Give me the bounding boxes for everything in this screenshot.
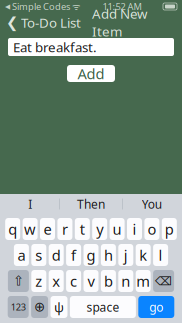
staticText: u — [113, 219, 122, 239]
button[interactable]: i — [127, 218, 142, 240]
staticText: t — [80, 219, 85, 239]
button[interactable]: w — [23, 218, 38, 240]
staticText: k — [139, 245, 147, 265]
button[interactable]: Then — [60, 194, 122, 214]
button[interactable]: space — [70, 296, 136, 318]
button[interactable]: Add — [67, 65, 115, 82]
staticText: h — [104, 245, 113, 265]
staticText: q — [8, 219, 17, 239]
staticText: l — [159, 245, 163, 265]
staticText: g — [86, 245, 95, 265]
button[interactable]: c — [66, 270, 81, 292]
staticText: i — [132, 219, 136, 239]
staticText: m — [136, 271, 150, 291]
staticText: x — [52, 271, 60, 291]
button[interactable]: o — [144, 218, 159, 240]
staticText: Eat breakfast. — [13, 38, 97, 56]
button[interactable]: h — [101, 244, 116, 266]
button[interactable]: z — [31, 270, 46, 292]
button[interactable]: r — [57, 218, 72, 240]
button[interactable]: Eat breakfast. — [0, 38, 182, 56]
button[interactable]: j — [118, 244, 133, 266]
staticText: b — [104, 271, 113, 291]
button[interactable]: t — [75, 218, 90, 240]
button[interactable]: s — [31, 244, 46, 266]
button[interactable]: Dictation — [50, 296, 67, 318]
button[interactable]: q — [5, 218, 20, 240]
button[interactable]: k — [136, 244, 151, 266]
button[interactable]: You — [123, 194, 181, 214]
button[interactable]: g — [83, 244, 98, 266]
staticText: c — [70, 271, 77, 291]
staticText: z — [35, 271, 42, 291]
staticText: w — [24, 219, 36, 239]
staticText: ⌫ — [155, 274, 172, 288]
staticText: n — [121, 271, 130, 291]
staticText: space — [86, 299, 119, 315]
button[interactable]: e — [40, 218, 55, 240]
staticText: Then — [77, 196, 105, 212]
button[interactable]: b — [101, 270, 116, 292]
staticText: Add — [77, 64, 104, 83]
staticText: Add New Item — [92, 5, 147, 40]
staticText: j — [124, 245, 128, 265]
staticText: ◀ — [5, 3, 10, 10]
staticText: ᯤ — [70, 0, 81, 13]
button[interactable]: Next keyboard — [31, 296, 48, 318]
button[interactable]: ❮ — [6, 11, 81, 34]
staticText: r — [62, 219, 68, 239]
staticText: go — [149, 299, 163, 315]
staticText: ⇧ — [13, 273, 24, 288]
staticText: ❮ — [6, 14, 18, 31]
staticText: ⊕ — [34, 299, 45, 314]
button[interactable]: x — [49, 270, 64, 292]
staticText: a — [17, 245, 25, 265]
staticText: e — [43, 219, 51, 239]
staticText: You — [142, 196, 162, 212]
button[interactable]: Shift — [8, 270, 29, 292]
button[interactable]: u — [110, 218, 125, 240]
button[interactable]: m — [136, 270, 151, 292]
staticText: d — [52, 245, 61, 265]
staticText: To-Do List — [21, 14, 81, 31]
staticText: s — [35, 245, 42, 265]
staticText: 123 — [11, 301, 26, 313]
button[interactable]: v — [83, 270, 98, 292]
staticText: 11:52 AM — [102, 0, 141, 13]
staticText: p — [165, 219, 174, 239]
staticText: v — [87, 271, 94, 291]
staticText: f — [71, 245, 76, 265]
staticText: ψ — [54, 298, 64, 316]
button[interactable]: l — [153, 244, 168, 266]
button[interactable]: Delete — [153, 270, 174, 292]
staticText: y — [96, 219, 103, 239]
button[interactable]: d — [49, 244, 64, 266]
button[interactable]: p — [162, 218, 177, 240]
button[interactable]: 123 — [8, 296, 29, 318]
staticText: I — [28, 196, 32, 212]
button[interactable]: a — [14, 244, 29, 266]
button[interactable]: go — [138, 296, 174, 318]
staticText: o — [147, 219, 156, 239]
button[interactable]: y — [92, 218, 107, 240]
button[interactable]: f — [66, 244, 81, 266]
staticText: Simple Codes — [10, 0, 70, 13]
button[interactable]: n — [118, 270, 133, 292]
button[interactable]: I — [1, 194, 59, 214]
